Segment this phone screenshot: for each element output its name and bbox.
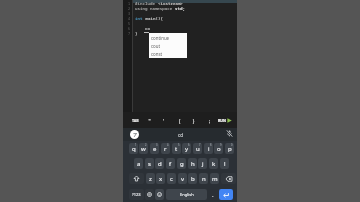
staticText: i — [208, 145, 210, 153]
staticText: . — [212, 191, 214, 199]
button[interactable]: English — [166, 189, 207, 200]
staticText: h — [191, 160, 195, 168]
staticText: English — [180, 192, 194, 197]
staticText: 1 — [128, 1, 131, 6]
button[interactable]: u — [193, 143, 202, 154]
button[interactable]: y — [182, 143, 191, 154]
staticText: u — [196, 145, 200, 153]
button[interactable]: const — [149, 50, 187, 58]
button[interactable]: TAB — [128, 112, 142, 128]
button[interactable]: q — [129, 143, 138, 154]
staticText: 5 — [178, 143, 180, 147]
button[interactable]: i — [204, 143, 213, 154]
staticText: 7 — [128, 31, 131, 36]
staticText: const — [151, 51, 163, 57]
button[interactable]: Microphone off — [226, 130, 233, 137]
staticText: 0 — [231, 143, 233, 147]
button[interactable]: j — [198, 158, 207, 169]
button[interactable]: continue — [149, 34, 187, 42]
staticText: c — [170, 175, 173, 183]
staticText: e — [153, 145, 157, 153]
button[interactable]: r — [161, 143, 170, 154]
button[interactable]: d — [155, 158, 164, 169]
staticText: n — [202, 175, 206, 183]
staticText: m — [212, 175, 218, 183]
staticText: 4 — [167, 143, 169, 147]
button[interactable]: Run — [227, 112, 232, 128]
button[interactable]: ; — [203, 112, 217, 128]
button[interactable]: o — [214, 143, 223, 154]
button[interactable] — [155, 189, 164, 200]
button[interactable]: v — [178, 173, 187, 184]
button[interactable]: e — [150, 143, 159, 154]
button[interactable]: cout — [149, 42, 187, 50]
staticText: <iostream> — [158, 1, 183, 7]
button[interactable]: b — [188, 173, 197, 184]
button[interactable]: x — [156, 173, 165, 184]
button[interactable]: z — [146, 173, 155, 184]
staticText: } — [135, 31, 138, 37]
staticText: using namespace — [135, 6, 175, 12]
button[interactable]: w — [139, 143, 148, 154]
button[interactable]: p — [225, 143, 234, 154]
button[interactable]: f — [166, 158, 175, 169]
button[interactable]: ?123 — [129, 189, 144, 200]
button[interactable]: a — [134, 158, 143, 169]
button[interactable]: g — [177, 158, 186, 169]
staticText: cd — [178, 132, 184, 138]
staticText: p — [228, 145, 232, 153]
staticText: 2 — [128, 6, 131, 11]
staticText: 8 — [210, 143, 212, 147]
staticText: #include — [135, 1, 158, 7]
button[interactable]: k — [209, 158, 218, 169]
button[interactable]: . — [210, 189, 216, 200]
button[interactable]: ) — [187, 112, 201, 128]
button[interactable] — [145, 189, 154, 200]
staticText: ) — [192, 117, 196, 124]
staticText: 3 — [156, 143, 158, 147]
staticText: ?123 — [132, 192, 141, 197]
staticText: 9 — [220, 143, 222, 147]
staticText: 4 — [128, 16, 131, 21]
button[interactable]: n — [199, 173, 208, 184]
staticText: ( — [178, 117, 182, 124]
staticText: std; — [175, 6, 185, 12]
button[interactable]: l — [220, 158, 229, 169]
staticText: x — [159, 175, 163, 183]
staticText: " — [148, 117, 152, 124]
staticText: f — [169, 160, 172, 168]
button[interactable]: s — [145, 158, 154, 169]
button[interactable]: ( — [173, 112, 187, 128]
button[interactable]: c — [167, 173, 176, 184]
staticText: 5 — [128, 21, 131, 26]
button[interactable]: ' — [157, 112, 171, 128]
button[interactable]: shift — [129, 173, 144, 184]
staticText: 1 — [135, 143, 137, 147]
staticText: ; — [208, 117, 212, 124]
staticText: a — [137, 160, 141, 168]
staticText: 3 — [128, 11, 131, 16]
staticText: g — [180, 160, 184, 168]
staticText: t — [175, 145, 178, 153]
staticText: TAB — [132, 118, 139, 123]
staticText: j — [202, 160, 204, 168]
staticText: o — [217, 145, 221, 153]
staticText: 6 — [188, 143, 190, 147]
button[interactable]: t — [172, 143, 181, 154]
button[interactable]: RUN — [215, 112, 229, 128]
button[interactable]: " — [143, 112, 157, 128]
button[interactable]: m — [210, 173, 219, 184]
button[interactable]: Assistant — [130, 130, 139, 139]
staticText: l — [224, 160, 226, 168]
button[interactable]: h — [188, 158, 197, 169]
staticText: y — [185, 145, 189, 153]
button[interactable]: del — [221, 173, 236, 184]
staticText: 7 — [199, 143, 201, 147]
staticText: k — [212, 160, 216, 168]
staticText: ' — [162, 117, 166, 124]
staticText: co — [135, 26, 150, 32]
staticText: s — [148, 160, 151, 168]
staticText: w — [141, 145, 146, 153]
button[interactable]: enter — [219, 189, 233, 200]
staticText: int — [135, 16, 143, 22]
